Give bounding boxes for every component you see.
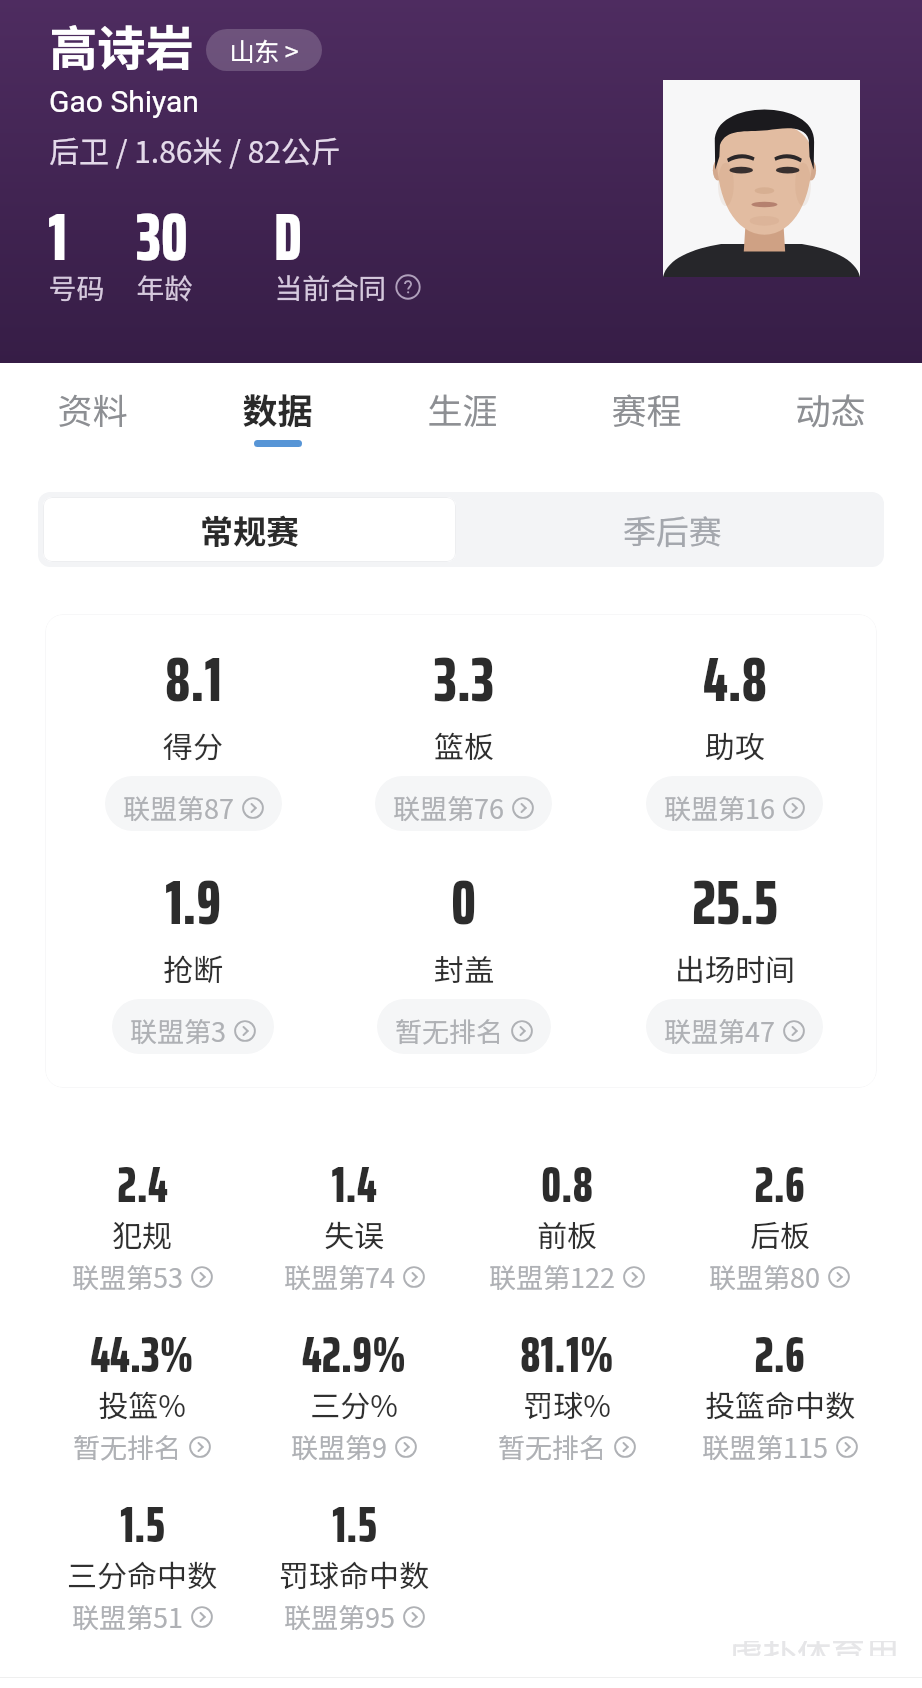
other: 排名详情	[403, 1606, 425, 1628]
staticText: 暂无排名	[73, 1427, 181, 1466]
button[interactable]: 81.1%	[460, 1315, 673, 1476]
staticText: 联盟第51	[72, 1597, 183, 1636]
other: 排名详情	[614, 1436, 636, 1458]
staticText: 3.3	[434, 631, 494, 729]
other: 排名详情	[403, 1266, 425, 1288]
staticText: 2.4	[117, 1145, 168, 1224]
staticText: 联盟第76	[393, 788, 504, 827]
staticText: 30	[136, 184, 188, 289]
staticText: 三分%	[310, 1382, 398, 1425]
staticText: 篮板	[434, 723, 494, 766]
staticText: 罚球%	[523, 1382, 611, 1425]
button[interactable]: 2.6	[673, 1145, 886, 1306]
staticText: 暂无排名	[498, 1427, 606, 1466]
button[interactable]: 常规赛	[43, 497, 456, 562]
staticText: 2.6	[754, 1145, 805, 1224]
button[interactable]: 1.4	[248, 1145, 460, 1306]
other: 排名详情	[512, 797, 534, 819]
staticText: 出场时间	[675, 946, 795, 989]
staticText: 联盟第95	[284, 1597, 395, 1636]
other: 排名详情	[623, 1266, 645, 1288]
other: 排名详情	[828, 1266, 850, 1288]
staticText: 动态	[795, 383, 866, 434]
button[interactable]: 联盟第76	[375, 776, 552, 831]
button[interactable]: 联盟第87	[105, 776, 282, 831]
other: 排名详情	[234, 1020, 256, 1042]
other: 说明	[395, 274, 421, 300]
staticText: 常规赛	[200, 506, 299, 554]
button[interactable]: 季后赛	[461, 492, 884, 567]
staticText: 年龄	[136, 267, 193, 308]
button[interactable]: 数据	[185, 363, 370, 458]
button[interactable]: 1.5	[36, 1485, 248, 1646]
staticText: 1.5	[332, 1485, 377, 1564]
staticText: 0	[451, 854, 476, 952]
staticText: 虎扑体育用户	[726, 1641, 902, 1656]
other: 排名详情	[242, 797, 264, 819]
button[interactable]: 暂无排名	[377, 999, 551, 1054]
other: 排名详情	[395, 1436, 417, 1458]
staticText: 暂无排名	[395, 1011, 503, 1050]
other: 排名详情	[511, 1020, 533, 1042]
staticText: 联盟第16	[664, 788, 775, 827]
staticText: 生涯	[427, 383, 498, 434]
button[interactable]: 44.3%	[36, 1315, 248, 1476]
button[interactable]: 联盟第3	[112, 999, 274, 1054]
staticText: 犯规	[112, 1212, 172, 1255]
button[interactable]: 资料	[0, 363, 185, 458]
staticText: 25.5	[692, 854, 778, 952]
staticText: 联盟第122	[489, 1257, 615, 1296]
staticText: 联盟第47	[664, 1011, 775, 1050]
button[interactable]: 动态	[738, 363, 922, 458]
staticText: 联盟第53	[72, 1257, 183, 1296]
staticText: 助攻	[705, 723, 765, 766]
staticText: 当前合同	[274, 267, 387, 308]
staticText: D	[274, 184, 302, 289]
staticText: 数据	[242, 383, 313, 434]
staticText: 42.9%	[302, 1315, 406, 1394]
button[interactable]: 赛程	[554, 363, 738, 458]
button[interactable]: 联盟第47	[646, 999, 823, 1054]
staticText: 三分命中数	[67, 1552, 217, 1595]
staticText: 0.8	[541, 1145, 593, 1224]
staticText: 赛程	[611, 383, 682, 434]
staticText: 资料	[57, 383, 128, 434]
button[interactable]: 联盟第16	[646, 776, 823, 831]
staticText: 得分	[163, 723, 223, 766]
staticText: Gao Shiyan	[49, 84, 199, 119]
button[interactable]: 2.6	[673, 1315, 886, 1476]
button[interactable]: 生涯	[370, 363, 554, 458]
staticText: 联盟第9	[291, 1427, 387, 1466]
staticText: 联盟第80	[709, 1257, 820, 1296]
staticText: 山东 >	[229, 32, 299, 68]
button[interactable]: 山东 >	[206, 29, 322, 71]
staticText: 季后赛	[623, 506, 722, 554]
button[interactable]: 0.8	[460, 1145, 673, 1306]
staticText: 失误	[324, 1212, 384, 1255]
other: 排名详情	[783, 797, 805, 819]
staticText: 投篮%	[98, 1382, 186, 1425]
staticText: 1.9	[165, 854, 221, 952]
staticText: 前板	[537, 1212, 597, 1255]
other: 排名详情	[783, 1020, 805, 1042]
staticText: 1.5	[120, 1485, 165, 1564]
staticText: 后卫 / 1.86米 / 82公斤	[49, 128, 341, 171]
staticText: 44.3%	[90, 1315, 194, 1394]
other: 排名详情	[189, 1436, 211, 1458]
staticText: 抢断	[163, 946, 223, 989]
staticText: 联盟第115	[702, 1427, 828, 1466]
staticText: 1.4	[331, 1145, 377, 1224]
staticText: 81.1%	[520, 1315, 614, 1394]
staticText: 号码	[48, 267, 105, 308]
staticText: 投篮命中数	[705, 1382, 855, 1425]
button[interactable]: 42.9%	[248, 1315, 460, 1476]
staticText: 联盟第3	[130, 1011, 226, 1050]
button[interactable]: 2.4	[36, 1145, 248, 1306]
staticText: 4.8	[703, 631, 767, 729]
staticText: 1	[48, 184, 67, 289]
staticText: 8.1	[165, 631, 222, 729]
button[interactable]: 1.5	[248, 1485, 460, 1646]
staticText: 封盖	[434, 946, 494, 989]
staticText: 联盟第74	[284, 1257, 395, 1296]
staticText: 后板	[750, 1212, 810, 1255]
